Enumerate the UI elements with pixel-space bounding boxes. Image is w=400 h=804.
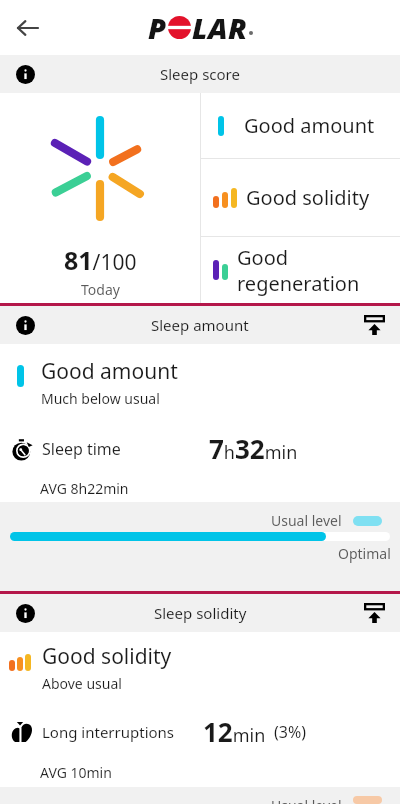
staticText: AVG 10min xyxy=(40,763,112,782)
staticText: 7h32min xyxy=(209,431,298,466)
staticText: AVG 8h22min xyxy=(40,479,129,498)
button[interactable]: Info xyxy=(15,315,35,335)
staticText: 12min xyxy=(203,714,266,749)
staticText: Sleep solidity xyxy=(154,603,247,623)
staticText: Today xyxy=(81,280,120,299)
staticText: Optimal xyxy=(338,544,391,563)
staticText: 81/100 xyxy=(64,243,137,277)
button[interactable]: Info xyxy=(15,64,35,84)
staticText: Good regeneration xyxy=(237,244,360,296)
staticText: Sleep score xyxy=(160,64,240,84)
staticText: Sleep amount xyxy=(151,315,249,335)
button[interactable]: Good solidity xyxy=(201,159,400,236)
staticText: Good solidity xyxy=(246,184,370,211)
button[interactable]: Back xyxy=(8,8,48,48)
staticText: LAR xyxy=(192,8,248,47)
staticText: Above usual xyxy=(42,674,122,693)
staticText: Good amount xyxy=(41,357,178,386)
staticText: Usual level xyxy=(271,511,342,530)
button[interactable]: Sleep score xyxy=(0,55,400,93)
staticText: Sleep time xyxy=(42,438,121,460)
staticText: Good solidity xyxy=(42,642,172,671)
staticText: Usual level xyxy=(271,796,342,804)
staticText: P xyxy=(148,8,167,47)
staticText: Much below usual xyxy=(41,389,160,408)
staticText: Long interruptions xyxy=(42,722,175,742)
button[interactable]: Good amount xyxy=(201,93,400,158)
button[interactable]: Collapse xyxy=(362,601,386,625)
button[interactable]: Info xyxy=(15,603,35,623)
button[interactable]: Good amount xyxy=(0,357,400,408)
button[interactable]: Collapse xyxy=(362,313,386,337)
button[interactable]: Sleep solidity xyxy=(0,594,400,632)
staticText: Good amount xyxy=(244,112,375,139)
staticText: (3%) xyxy=(274,721,307,743)
button[interactable]: Sleep amount xyxy=(0,306,400,344)
button[interactable]: Good regeneration xyxy=(201,237,400,303)
button[interactable]: Good solidity xyxy=(0,642,400,693)
